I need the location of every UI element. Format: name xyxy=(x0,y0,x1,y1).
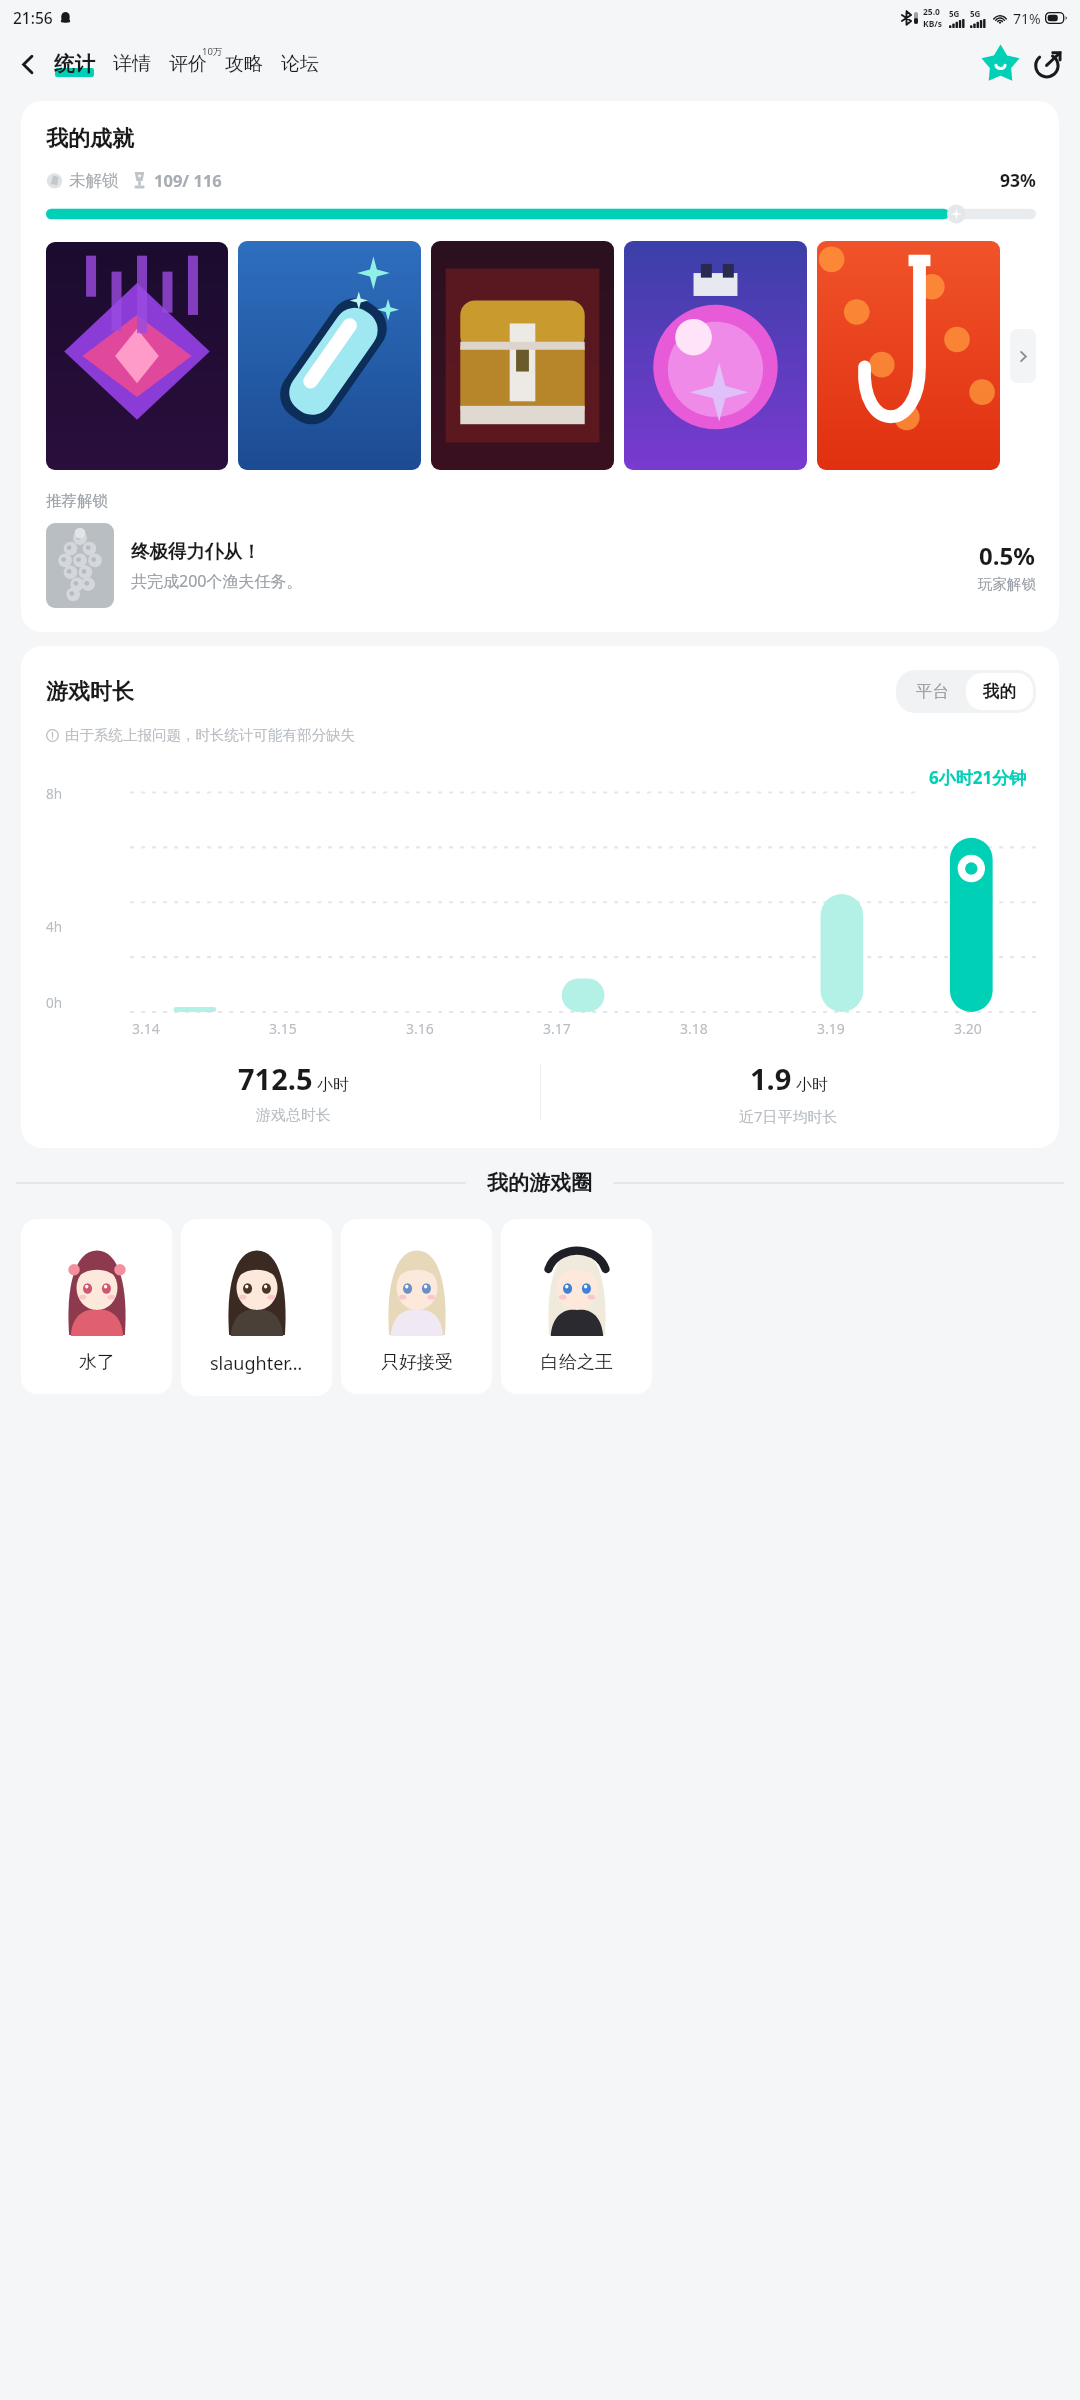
button[interactable]: Favorite xyxy=(978,42,1022,86)
staticText: 小时 xyxy=(317,1075,349,1095)
staticText: 3.15 xyxy=(269,1019,297,1038)
staticText: 10万 xyxy=(202,45,223,58)
staticText: 0.5% xyxy=(979,539,1035,572)
staticText: 3.14 xyxy=(132,1019,160,1038)
staticText: 我的 xyxy=(983,681,1016,702)
staticText: 0h xyxy=(46,994,63,1012)
staticText: 平台 xyxy=(916,681,949,702)
button[interactable]: 白给之王 xyxy=(501,1219,652,1394)
staticText: 详情 xyxy=(113,52,151,76)
staticText: 109/ 116 xyxy=(154,169,222,191)
button[interactable]: Share xyxy=(1026,42,1070,86)
button[interactable]: More achievements xyxy=(1010,329,1036,383)
staticText: 25.0 xyxy=(923,6,940,18)
staticText: 8h xyxy=(46,785,63,803)
button[interactable] xyxy=(46,523,114,608)
staticText: 71% xyxy=(1013,9,1041,28)
staticText: 3.17 xyxy=(543,1019,571,1038)
staticText: 我的游戏圈 xyxy=(487,1170,592,1196)
staticText: 近7日平均时长 xyxy=(739,1106,838,1126)
button[interactable]: 统计 xyxy=(52,47,97,81)
staticText: 攻略 xyxy=(225,52,263,76)
button[interactable] xyxy=(46,242,228,470)
staticText: slaughter… xyxy=(210,1351,303,1376)
button[interactable] xyxy=(238,241,421,470)
staticText: 游戏总时长 xyxy=(256,1106,331,1125)
staticText: 5G xyxy=(949,8,960,19)
button[interactable] xyxy=(817,241,1000,470)
button[interactable]: 水了 xyxy=(21,1219,172,1394)
button[interactable]: 712.5 xyxy=(46,1059,540,1125)
button[interactable]: slaughter… xyxy=(181,1219,332,1396)
staticText: 白给之王 xyxy=(541,1351,613,1374)
button[interactable]: 评价 xyxy=(167,48,209,80)
staticText: KB/s xyxy=(923,18,943,30)
staticText: 终极得力仆从！ xyxy=(131,540,261,563)
staticText: 1.9 xyxy=(750,1059,792,1098)
button[interactable]: 只好接受 xyxy=(341,1219,492,1394)
button[interactable]: Back xyxy=(6,42,50,86)
staticText: 未解锁 xyxy=(69,170,119,191)
staticText: 3.18 xyxy=(680,1019,708,1038)
staticText: 5G xyxy=(970,8,981,19)
button[interactable]: 1.9 xyxy=(541,1059,1036,1126)
staticText: 3.20 xyxy=(954,1019,982,1038)
button[interactable] xyxy=(624,241,807,470)
staticText: 由于系统上报问题，时长统计可能有部分缺失 xyxy=(65,726,355,744)
staticText: 712.5 xyxy=(238,1059,313,1098)
button[interactable]: 详情 xyxy=(111,48,153,80)
staticText: 评价 xyxy=(169,52,207,76)
staticText: 4h xyxy=(46,918,63,936)
staticText: 小时 xyxy=(796,1075,828,1095)
staticText: 3.19 xyxy=(817,1019,845,1038)
staticText: 我的成就 xyxy=(46,125,134,153)
staticText: 玩家解锁 xyxy=(978,575,1036,593)
staticText: 游戏时长 xyxy=(46,678,134,706)
staticText: 21:56 xyxy=(13,7,53,28)
staticText: 6小时21分钟 xyxy=(929,766,1027,789)
staticText: 推荐解锁 xyxy=(46,491,108,511)
staticText: 只好接受 xyxy=(381,1351,453,1374)
button[interactable]: 我的 xyxy=(966,673,1033,710)
button[interactable]: 平台 xyxy=(899,673,966,710)
button[interactable]: 论坛 xyxy=(279,48,321,80)
staticText: 论坛 xyxy=(281,52,319,76)
button[interactable] xyxy=(431,241,614,470)
button[interactable]: 攻略 xyxy=(223,48,265,80)
staticText: 3.16 xyxy=(406,1019,434,1038)
button[interactable]: 我的成就 xyxy=(21,101,1059,632)
staticText: 共完成200个渔夫任务。 xyxy=(131,570,303,592)
staticText: 统计 xyxy=(54,51,95,77)
staticText: 水了 xyxy=(79,1351,115,1374)
staticText: 93% xyxy=(1000,168,1036,192)
